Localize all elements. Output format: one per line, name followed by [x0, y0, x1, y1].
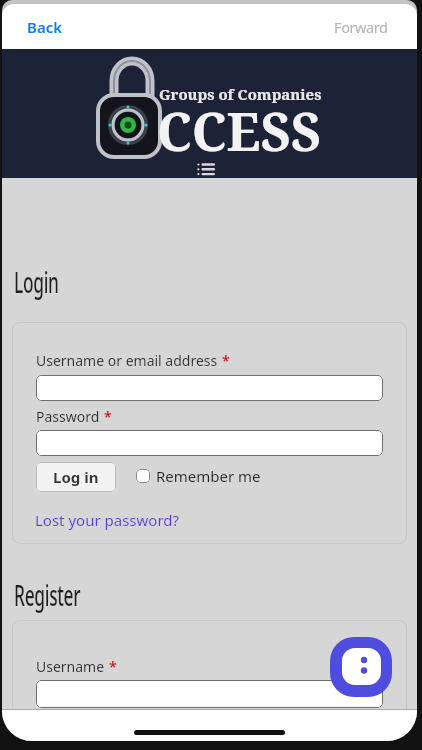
staticText: Back — [27, 17, 63, 37]
staticText: Forward — [334, 17, 388, 37]
staticText: Remember me — [156, 466, 261, 486]
staticText: * — [109, 657, 117, 676]
staticText: Username or email address — [36, 351, 218, 370]
staticText: Username — [36, 657, 105, 676]
staticText: Lost your password? — [35, 510, 180, 530]
staticText: * — [222, 351, 230, 370]
staticText: Register — [14, 576, 80, 614]
staticText: Groups of Companies — [159, 84, 322, 104]
button[interactable] — [330, 637, 392, 697]
staticText: Password — [36, 407, 100, 426]
button[interactable]: Log in — [36, 462, 116, 492]
button[interactable]: Forward — [345, 17, 399, 37]
button[interactable]: Lost your password? — [35, 510, 180, 530]
staticText: * — [104, 407, 112, 426]
staticText: CCESS — [157, 95, 321, 166]
button[interactable]: Remember me — [136, 466, 261, 486]
staticText: Login — [14, 263, 59, 301]
staticText: Log in — [53, 467, 99, 487]
button[interactable]: Back — [16, 17, 52, 37]
